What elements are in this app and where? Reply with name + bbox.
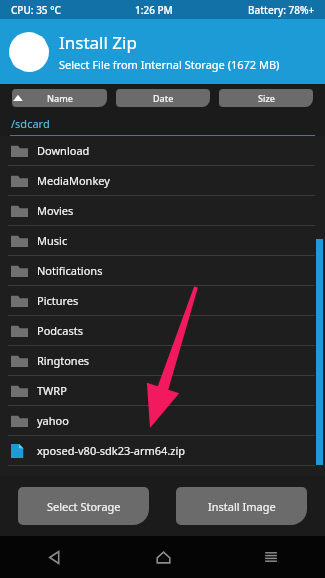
staticText: Music bbox=[37, 233, 68, 248]
staticText: Notifications bbox=[37, 263, 103, 278]
button[interactable]: Recent apps bbox=[217, 536, 325, 578]
button[interactable]: Download bbox=[0, 136, 325, 166]
staticText: Pictures bbox=[37, 293, 79, 308]
button[interactable]: Install Image bbox=[176, 487, 307, 525]
staticText: TWRP bbox=[37, 383, 67, 398]
button[interactable]: TWRP bbox=[0, 376, 325, 406]
staticText: Name bbox=[47, 92, 73, 104]
button[interactable]: Pictures bbox=[0, 286, 325, 316]
staticText: Download bbox=[37, 143, 90, 158]
button[interactable]: xposed-v80-sdk23-arm64.zip bbox=[0, 436, 325, 466]
button[interactable]: Music bbox=[0, 226, 325, 256]
staticText: Ringtones bbox=[37, 353, 90, 368]
button[interactable]: Ringtones bbox=[0, 346, 325, 376]
staticText: 1:26 PM bbox=[135, 3, 173, 17]
staticText: CPU: 35 °C bbox=[11, 3, 61, 17]
button[interactable]: Movies bbox=[0, 196, 325, 226]
button[interactable]: Home bbox=[109, 536, 217, 578]
button[interactable]: Notifications bbox=[0, 256, 325, 286]
staticText: Select Storage bbox=[47, 499, 121, 514]
staticText: Install Zip bbox=[59, 31, 137, 54]
staticText: Size bbox=[258, 92, 275, 104]
button[interactable]: Podcasts bbox=[0, 316, 325, 346]
staticText: Movies bbox=[37, 203, 74, 218]
button[interactable]: Date bbox=[116, 89, 210, 107]
staticText: Battery: 78%+ bbox=[248, 3, 315, 17]
staticText: MediaMonkey bbox=[37, 173, 110, 188]
button[interactable]: Select Storage bbox=[18, 487, 149, 525]
staticText: Date bbox=[153, 92, 174, 104]
staticText: Podcasts bbox=[37, 323, 84, 338]
button[interactable]: MediaMonkey bbox=[0, 166, 325, 196]
staticText: xposed-v80-sdk23-arm64.zip bbox=[37, 443, 186, 458]
button[interactable]: Name bbox=[12, 89, 107, 107]
button[interactable]: yahoo bbox=[0, 406, 325, 436]
button[interactable]: Size bbox=[219, 89, 313, 107]
staticText: /sdcard bbox=[11, 116, 50, 131]
button[interactable]: Back bbox=[0, 536, 109, 578]
staticText: Select File from Internal Storage (1672 … bbox=[59, 57, 280, 72]
staticText: yahoo bbox=[37, 413, 69, 428]
staticText: Install Image bbox=[208, 499, 276, 514]
